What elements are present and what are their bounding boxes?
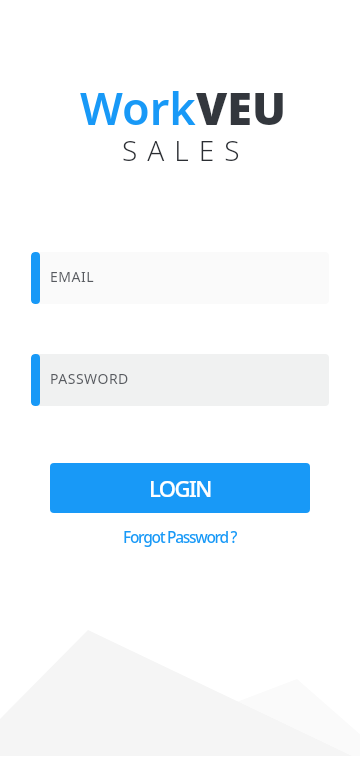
staticText: SALES	[122, 131, 250, 169]
staticText: VEU	[196, 77, 287, 138]
button[interactable]: PASSWORD	[31, 354, 329, 406]
button[interactable]: EMAIL	[31, 252, 329, 304]
button[interactable]: LOGIN	[50, 463, 310, 513]
staticText: Work	[80, 77, 196, 138]
button[interactable]: Forgot Password ?	[123, 526, 237, 547]
staticText: LOGIN	[149, 473, 211, 503]
staticText: PASSWORD	[50, 369, 129, 388]
staticText: EMAIL	[50, 267, 95, 286]
